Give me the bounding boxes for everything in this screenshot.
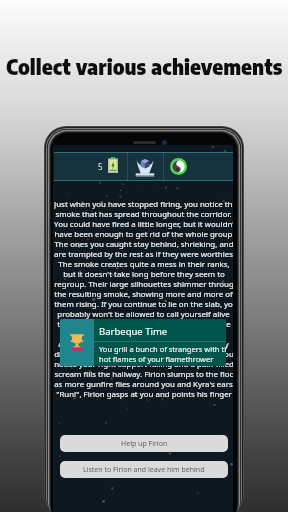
staticText: The smoke creates quite a mess in their … bbox=[58, 259, 230, 269]
staticText: Help up Firion bbox=[121, 439, 168, 449]
staticText: 5 bbox=[98, 161, 103, 172]
staticText: difficult for you, due to the smoke. Sud… bbox=[54, 349, 233, 359]
staticText: them rising. If you continue to lie on t… bbox=[54, 299, 233, 309]
button[interactable]: Help up Firion bbox=[60, 435, 228, 452]
staticText: a glow everywhere and breathing is extre… bbox=[58, 339, 229, 349]
staticText: Barbeque Time bbox=[99, 325, 168, 338]
staticText: Listen to Firion and leave him behind bbox=[83, 465, 205, 475]
staticText: The ones you caught stay behind, shrieki… bbox=[54, 239, 233, 249]
staticText: as more gunfire flies around you and Kyr… bbox=[54, 379, 233, 389]
staticText: the resulting smoke, showing more and mo… bbox=[54, 289, 233, 299]
staticText: You grill a bunch of strangers with the bbox=[99, 344, 226, 354]
staticText: regroup. Their large silhouettes shimmer… bbox=[54, 279, 233, 289]
staticText: smoke that has spread throughout the cor… bbox=[55, 209, 232, 219]
staticText: tomorrow. As you push yourself up, you r… bbox=[57, 319, 231, 329]
button[interactable]: Barbeque Time bbox=[60, 319, 226, 366]
button[interactable]: Listen to Firion and leave him behind bbox=[60, 461, 228, 478]
staticText: Collect various achievements bbox=[6, 54, 283, 79]
staticText: notice your right support failing and a … bbox=[54, 359, 233, 369]
staticText: are trampled by the rest as if they were… bbox=[54, 249, 233, 259]
staticText: You could have fired a little longer, bu… bbox=[54, 219, 233, 229]
button[interactable]: Karma bbox=[170, 158, 187, 175]
staticText: but it doesn't take long before they see… bbox=[63, 269, 225, 279]
staticText: scream fills the hallway. Firion slumps … bbox=[54, 369, 233, 379]
staticText: hot flames of your flamethrower bbox=[99, 354, 214, 364]
staticText: probably won't be allowed to call yourse… bbox=[57, 309, 230, 319]
staticText: Just when you have stopped firing, you n… bbox=[54, 199, 233, 209]
staticText: "Run!", Firion gasps at you and points h… bbox=[56, 389, 232, 399]
staticText: have been enough to get rid of the whole… bbox=[54, 229, 233, 239]
button[interactable]: Energy bbox=[108, 157, 118, 173]
staticText: that your body is unhurt, but there is bbox=[75, 329, 212, 339]
button[interactable]: Inventory bbox=[134, 157, 156, 178]
